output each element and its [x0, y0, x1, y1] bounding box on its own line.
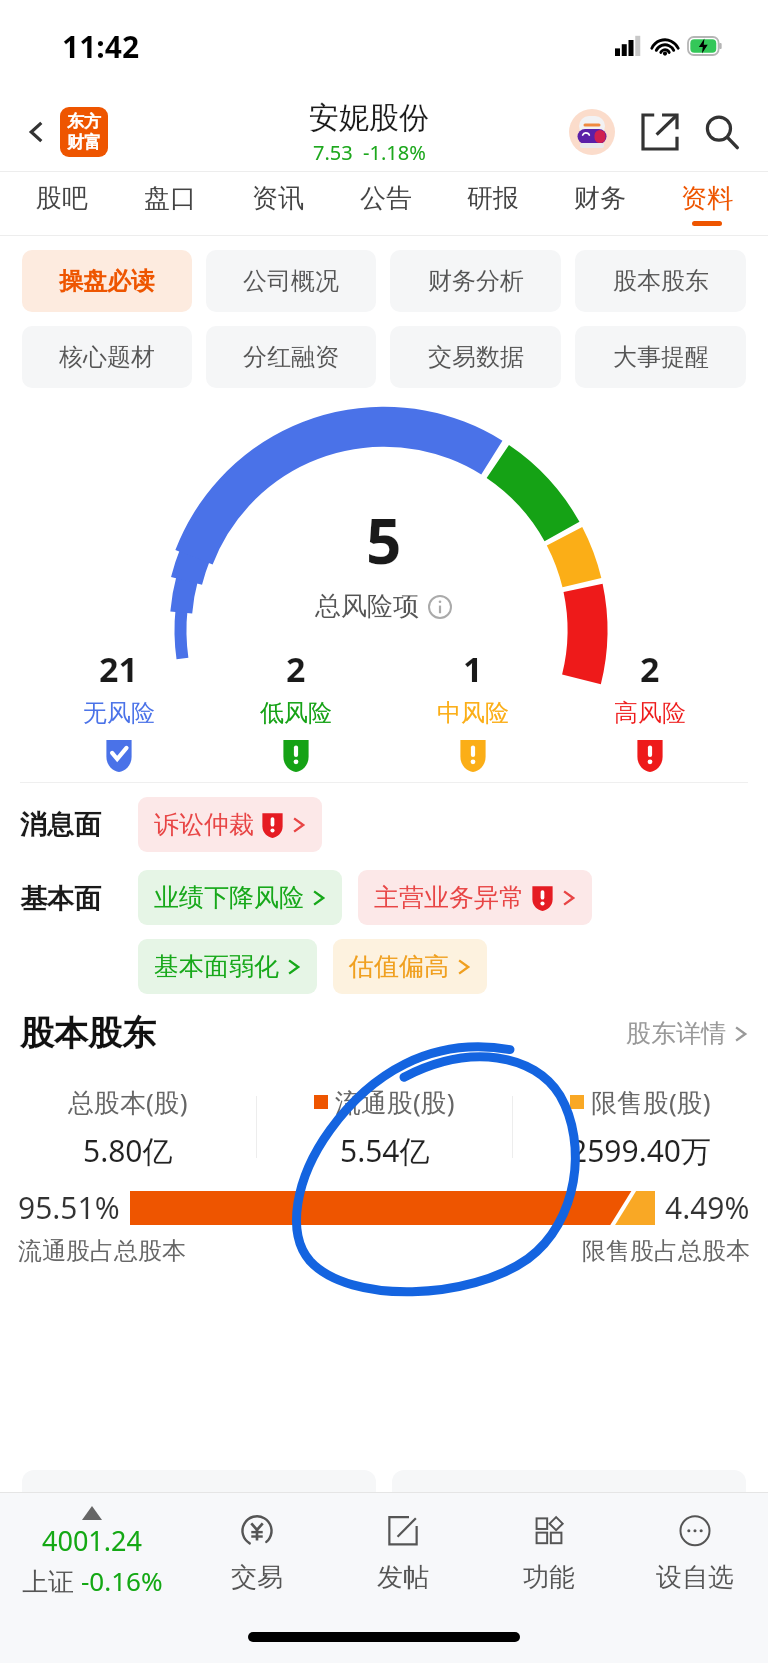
staticText: 资讯 [252, 182, 304, 215]
staticText: 5 [366, 498, 402, 582]
button[interactable]: 2 [207, 646, 384, 772]
staticText: 股本股东 [613, 266, 709, 296]
staticText: 2 [640, 646, 660, 692]
staticText: 基本面弱化 [154, 951, 279, 982]
staticText: 核心题材 [59, 342, 155, 372]
staticText: 交易 [231, 1561, 283, 1594]
button[interactable]: 交易数据 [390, 326, 561, 388]
staticText: 资料 [681, 182, 733, 215]
staticText: 功能 [523, 1561, 575, 1594]
staticText: 消息面 [20, 808, 138, 842]
button[interactable]: 4001.24 [0, 1493, 184, 1611]
button[interactable]: 股吧 [8, 172, 116, 236]
button[interactable]: 发帖 [330, 1493, 476, 1611]
button[interactable]: 资讯 [224, 172, 332, 236]
button[interactable]: 核心题材 [22, 326, 192, 388]
staticText: 2 [286, 646, 306, 692]
staticText: 盘口 [144, 182, 196, 215]
button[interactable]: 21 [30, 646, 207, 772]
staticText: 分红融资 [243, 342, 339, 372]
staticText: 5.54亿 [340, 1130, 430, 1171]
staticText: 流通股(股) [335, 1084, 455, 1120]
staticText: 高风险 [614, 698, 686, 728]
staticText: 11:42 [62, 26, 140, 67]
button[interactable]: 操盘必读 [22, 250, 192, 312]
staticText: 财富 [67, 132, 101, 153]
staticText: 基本面 [20, 882, 138, 916]
staticText: 东方 [67, 111, 101, 132]
staticText: 流通股占总股本 [18, 1236, 186, 1266]
button[interactable]: 流通股(股) [257, 1084, 512, 1171]
staticText: 研报 [467, 182, 519, 215]
button[interactable]: 大事提醒 [575, 326, 746, 388]
staticText: 公告 [360, 182, 412, 215]
staticText: 中风险 [437, 698, 509, 728]
staticText: 股东详情 [626, 1018, 726, 1049]
button[interactable]: 股本股东 [575, 250, 746, 312]
staticText: 发帖 [377, 1561, 429, 1594]
staticText: 总风险项 [315, 590, 419, 623]
button[interactable]: AI assistant [564, 104, 620, 160]
button[interactable]: 估值偏高 [333, 939, 487, 994]
button[interactable]: 限售股(股) [513, 1084, 768, 1171]
staticText: 2599.40万 [570, 1130, 711, 1171]
staticText: -0.16% [81, 1563, 163, 1598]
staticText: 95.51% [18, 1187, 120, 1228]
staticText: 安妮股份 [309, 99, 429, 137]
button[interactable]: 盘口 [116, 172, 224, 236]
staticText: 股本股东 [20, 1012, 156, 1055]
staticText: 21 [99, 646, 138, 692]
button[interactable]: 总股本(股) [0, 1084, 256, 1171]
staticText: 设自选 [656, 1561, 734, 1594]
button[interactable]: East Money [60, 107, 108, 157]
staticText: 低风险 [260, 698, 332, 728]
staticText: 估值偏高 [349, 951, 449, 982]
button[interactable]: 诉讼仲裁 [138, 797, 322, 852]
button[interactable]: 股东详情 [626, 1018, 748, 1049]
staticText: 上证 [22, 1563, 81, 1599]
staticText: 总股本(股) [68, 1084, 188, 1120]
staticText: 4001.24 [42, 1522, 142, 1559]
staticText: 业绩下降风险 [154, 882, 304, 913]
staticText: 无风险 [83, 698, 155, 728]
staticText: 操盘必读 [59, 266, 155, 296]
button[interactable]: 财务 [546, 172, 653, 236]
staticText: 限售股占总股本 [582, 1236, 750, 1266]
button[interactable]: 2 [561, 646, 738, 772]
staticText: 7.53 -1.18% [313, 139, 426, 166]
staticText: 诉讼仲裁 [154, 809, 254, 840]
staticText: 大事提醒 [613, 342, 709, 372]
button[interactable]: 交易 [184, 1493, 330, 1611]
button[interactable]: 1 [384, 646, 561, 772]
button[interactable]: 研报 [439, 172, 546, 236]
button[interactable]: Search [696, 106, 748, 158]
staticText: 交易数据 [428, 342, 524, 372]
button[interactable]: 财务分析 [390, 250, 561, 312]
staticText: 股吧 [36, 182, 88, 215]
button[interactable]: Info [427, 594, 453, 620]
staticText: 4.49% [665, 1187, 750, 1228]
button[interactable]: 业绩下降风险 [138, 870, 342, 925]
button[interactable]: 主营业务异常 [358, 870, 592, 925]
staticText: 限售股(股) [591, 1084, 711, 1120]
button[interactable]: 公告 [332, 172, 439, 236]
button[interactable]: 分红融资 [206, 326, 376, 388]
button[interactable]: 设自选 [622, 1493, 768, 1611]
staticText: 公司概况 [243, 266, 339, 296]
button[interactable]: 资料 [653, 172, 760, 236]
staticText: 5.80亿 [83, 1130, 173, 1171]
staticText: 1 [463, 646, 483, 692]
button[interactable]: 公司概况 [206, 250, 376, 312]
button[interactable]: Back [14, 109, 60, 155]
button[interactable]: 基本面弱化 [138, 939, 317, 994]
staticText: 财务分析 [428, 266, 524, 296]
staticText: 主营业务异常 [374, 882, 524, 913]
button[interactable]: 功能 [476, 1493, 622, 1611]
button[interactable]: Share [634, 106, 686, 158]
staticText: 财务 [574, 182, 626, 215]
